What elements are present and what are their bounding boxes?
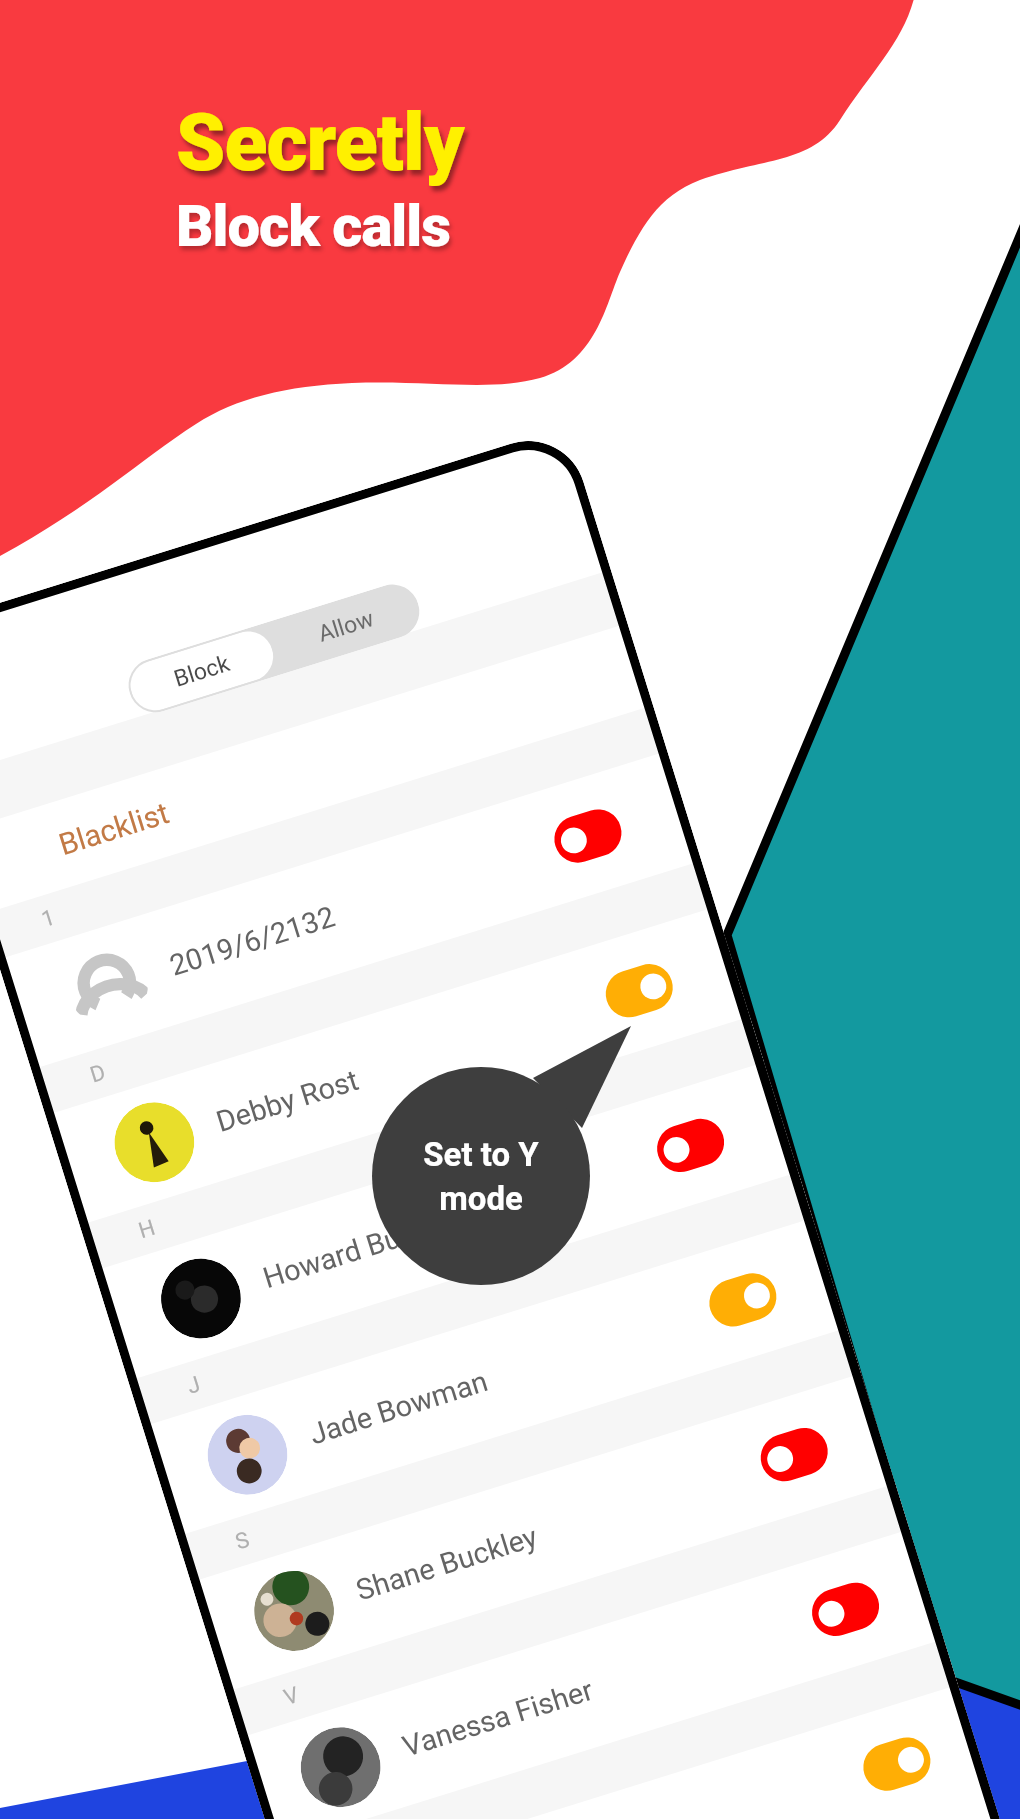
- button[interactable]: April Ward: [288, 1685, 992, 1819]
- button[interactable]: Allow: [266, 578, 426, 674]
- staticText: D: [87, 1059, 109, 1089]
- button[interactable]: Shane Buckley: [191, 1374, 895, 1692]
- button[interactable]: Vanessa Fisher: [239, 1529, 944, 1819]
- staticText: 1: [38, 904, 59, 933]
- button[interactable]: Debby Rost: [45, 907, 750, 1225]
- staticText: 2019/6/2132: [166, 899, 339, 983]
- staticText: H: [135, 1215, 158, 1244]
- staticText: Vanessa Fisher: [399, 1672, 598, 1764]
- button[interactable]: Block enabled: [755, 1422, 834, 1487]
- staticText: Secretly: [176, 97, 464, 190]
- staticText: Shane Buckley: [352, 1519, 542, 1608]
- button[interactable]: Block: [124, 625, 279, 717]
- staticText: Blacklist: [55, 795, 174, 862]
- staticText: Jade Bowman: [305, 1364, 492, 1451]
- staticText: J: [184, 1371, 204, 1400]
- button[interactable]: Block disabled: [600, 958, 679, 1023]
- staticText: Block calls: [176, 192, 450, 260]
- staticText: S: [232, 1526, 253, 1555]
- button[interactable]: Block enabled: [651, 1113, 730, 1178]
- button[interactable]: Jade Bowman: [142, 1218, 847, 1537]
- button[interactable]: Block disabled: [857, 1732, 936, 1797]
- staticText: Allow: [315, 605, 377, 648]
- button[interactable]: Block enabled: [548, 803, 627, 869]
- button[interactable]: 2019/6/2132: [0, 751, 701, 1070]
- button[interactable]: Block disabled: [703, 1267, 782, 1332]
- staticText: Debby Rost: [212, 1063, 363, 1139]
- button[interactable]: Block enabled: [806, 1577, 885, 1642]
- button[interactable]: Set to Y mode tip: [368, 1063, 594, 1289]
- button[interactable]: Blacklist: [0, 623, 653, 914]
- staticText: Block: [171, 650, 233, 693]
- staticText: Howard Burke: [259, 1208, 443, 1295]
- button[interactable]: Howard Burke: [94, 1062, 798, 1381]
- staticText: Set to Y mode: [423, 1135, 539, 1218]
- staticText: V: [281, 1682, 303, 1711]
